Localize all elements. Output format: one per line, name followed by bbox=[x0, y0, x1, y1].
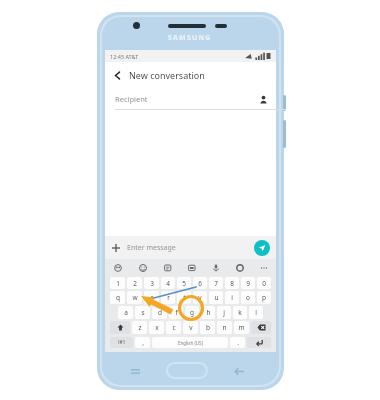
button[interactable]: 9 bbox=[241, 277, 255, 289]
staticText: c bbox=[172, 323, 176, 332]
button[interactable]: w bbox=[127, 291, 142, 304]
button[interactable]: q bbox=[110, 291, 125, 304]
staticText: SAMSUNG bbox=[168, 33, 212, 43]
staticText: Enter message bbox=[127, 243, 176, 253]
button[interactable]: y bbox=[193, 291, 207, 304]
button[interactable]: Settings bbox=[228, 259, 252, 276]
staticText: g bbox=[190, 308, 194, 317]
button[interactable]: Backspace bbox=[251, 321, 271, 334]
button[interactable]: Sticker bbox=[105, 259, 130, 276]
button[interactable]: k bbox=[233, 306, 247, 319]
button[interactable]: Navigate up bbox=[105, 62, 129, 88]
button[interactable]: h bbox=[201, 306, 215, 319]
button[interactable]: !#1 bbox=[110, 337, 133, 348]
staticText: 9 bbox=[246, 279, 250, 288]
button[interactable]: b bbox=[200, 321, 215, 334]
button[interactable]: Emoji bbox=[130, 259, 155, 276]
button[interactable]: 2 bbox=[127, 277, 142, 289]
button[interactable]: x bbox=[149, 321, 164, 334]
button[interactable]: 7 bbox=[209, 277, 223, 289]
button[interactable]: v bbox=[183, 321, 198, 334]
button[interactable]: Recents bbox=[128, 364, 142, 378]
button[interactable]: a bbox=[118, 306, 133, 319]
button[interactable]: s bbox=[135, 306, 150, 319]
staticText: Recipient bbox=[115, 94, 148, 104]
staticText: w bbox=[132, 293, 138, 302]
button[interactable]: English (US) bbox=[152, 337, 228, 348]
staticText: English (US) bbox=[178, 340, 203, 346]
button[interactable]: g bbox=[185, 306, 199, 319]
staticText: . bbox=[237, 338, 239, 347]
button[interactable]: Back bbox=[232, 364, 246, 378]
staticText: 2 bbox=[133, 279, 137, 288]
button[interactable]: Add attachment bbox=[105, 236, 127, 259]
button[interactable]: n bbox=[217, 321, 232, 334]
button[interactable]: Voice input bbox=[204, 259, 228, 276]
button[interactable]: 6 bbox=[193, 277, 207, 289]
button[interactable]: c bbox=[166, 321, 181, 334]
staticText: a bbox=[124, 308, 128, 317]
staticText: y bbox=[198, 293, 202, 302]
staticText: u bbox=[214, 293, 219, 302]
staticText: 7 bbox=[214, 279, 218, 288]
staticText: r bbox=[167, 293, 170, 302]
button[interactable]: p bbox=[257, 291, 271, 304]
button[interactable]: Enter bbox=[247, 337, 271, 348]
staticText: v bbox=[189, 323, 193, 332]
staticText: 12:45 AT&T bbox=[110, 53, 139, 60]
staticText: i bbox=[231, 293, 233, 302]
button[interactable]: Clipboard bbox=[180, 259, 204, 276]
button[interactable]: 0 bbox=[257, 277, 271, 289]
button[interactable]: 1 bbox=[110, 277, 125, 289]
staticText: e bbox=[150, 293, 154, 302]
staticText: , bbox=[142, 338, 144, 347]
button[interactable]: d bbox=[152, 306, 167, 319]
staticText: s bbox=[141, 308, 145, 317]
staticText: n bbox=[222, 323, 227, 332]
button[interactable]: 5 bbox=[177, 277, 191, 289]
button[interactable]: i bbox=[225, 291, 239, 304]
button[interactable]: 8 bbox=[225, 277, 239, 289]
button[interactable]: e bbox=[144, 291, 159, 304]
button[interactable]: . bbox=[230, 337, 245, 348]
staticText: z bbox=[138, 323, 142, 332]
button[interactable]: r bbox=[161, 291, 175, 304]
button[interactable]: j bbox=[217, 306, 231, 319]
button[interactable]: f bbox=[169, 306, 183, 319]
button[interactable]: 3 bbox=[144, 277, 159, 289]
staticText: j bbox=[223, 308, 225, 317]
staticText: 8 bbox=[230, 279, 234, 288]
staticText: f bbox=[175, 308, 178, 317]
staticText: New conversation bbox=[129, 69, 205, 81]
button[interactable]: o bbox=[241, 291, 255, 304]
button[interactable]: Recipient bbox=[105, 88, 276, 110]
button[interactable]: Shift bbox=[110, 321, 130, 334]
staticText: b bbox=[206, 323, 210, 332]
staticText: 1 bbox=[116, 279, 120, 288]
staticText: x bbox=[155, 323, 159, 332]
staticText: 4 bbox=[166, 279, 170, 288]
staticText: 0 bbox=[262, 279, 266, 288]
staticText: 3 bbox=[150, 279, 154, 288]
staticText: t bbox=[183, 293, 186, 302]
staticText: d bbox=[158, 308, 162, 317]
button[interactable]: t bbox=[177, 291, 191, 304]
button[interactable]: u bbox=[209, 291, 223, 304]
staticText: !#1 bbox=[118, 339, 126, 346]
staticText: o bbox=[246, 293, 250, 302]
button[interactable]: l bbox=[249, 306, 263, 319]
button[interactable]: , bbox=[135, 337, 150, 348]
staticText: 5 bbox=[182, 279, 186, 288]
button[interactable]: z bbox=[132, 321, 147, 334]
button[interactable]: m bbox=[234, 321, 249, 334]
staticText: 6 bbox=[198, 279, 202, 288]
button[interactable]: More options bbox=[252, 259, 276, 276]
staticText: p bbox=[262, 293, 266, 302]
staticText: l bbox=[255, 308, 257, 317]
button[interactable]: 4 bbox=[161, 277, 175, 289]
staticText: h bbox=[206, 308, 211, 317]
button[interactable]: GIF bbox=[155, 259, 180, 276]
staticText: k bbox=[238, 308, 242, 317]
staticText: q bbox=[116, 293, 120, 302]
button[interactable]: Send bbox=[254, 240, 270, 256]
